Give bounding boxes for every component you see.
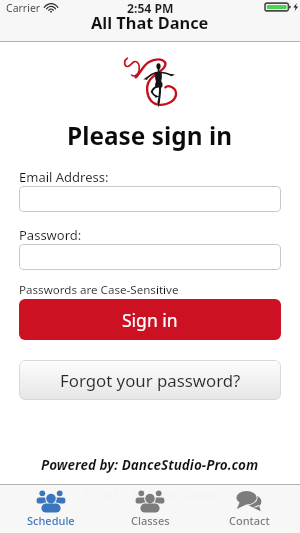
staticText: Forgot your password?	[60, 369, 241, 392]
button[interactable]: Sign in	[19, 299, 281, 340]
button[interactable]: Contact	[201, 485, 297, 533]
staticText: Schedule	[27, 513, 75, 528]
staticText: Powered by: DanceStudio-Pro.com	[41, 456, 259, 474]
staticText: Contact	[229, 513, 270, 528]
staticText: Carrier	[6, 1, 41, 14]
button[interactable]: Schedule	[3, 485, 99, 533]
button[interactable]	[19, 244, 281, 270]
staticText: All That Dance	[91, 11, 209, 33]
staticText: Please sign in	[67, 119, 233, 152]
button[interactable]	[19, 186, 281, 212]
staticText: Password:	[19, 226, 82, 244]
staticText: Passwords are Case-Sensitive	[19, 282, 179, 298]
staticText: © 2017 All That Dance	[83, 486, 218, 504]
staticText: Sign in	[122, 308, 178, 332]
button[interactable]: Classes	[102, 485, 198, 533]
staticText: 2:54 PM	[127, 0, 174, 17]
staticText: Email Address:	[19, 168, 109, 186]
button[interactable]: Forgot your password?	[19, 360, 281, 400]
staticText: Classes	[131, 513, 170, 528]
